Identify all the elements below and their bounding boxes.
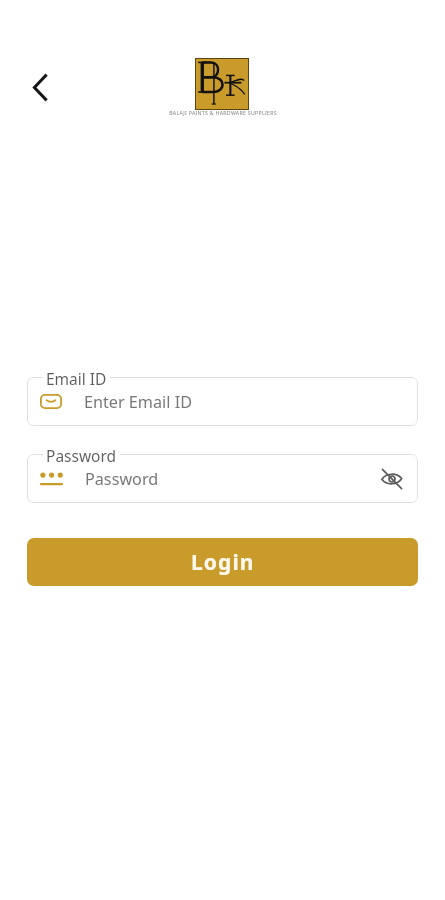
staticText: Email ID	[46, 368, 107, 389]
staticText: BALAJI PAINTS & HARDWARE SUPPLIERS	[169, 109, 277, 116]
button[interactable]	[27, 454, 418, 503]
staticText: Login	[191, 548, 255, 577]
staticText: Password	[46, 445, 117, 466]
button[interactable]: Back	[19, 67, 60, 108]
button[interactable]: Show password	[378, 465, 406, 493]
staticText: Password	[85, 468, 159, 490]
staticText: Enter Email ID	[84, 391, 192, 413]
button[interactable]	[27, 377, 418, 426]
button[interactable]: Login	[27, 538, 418, 586]
